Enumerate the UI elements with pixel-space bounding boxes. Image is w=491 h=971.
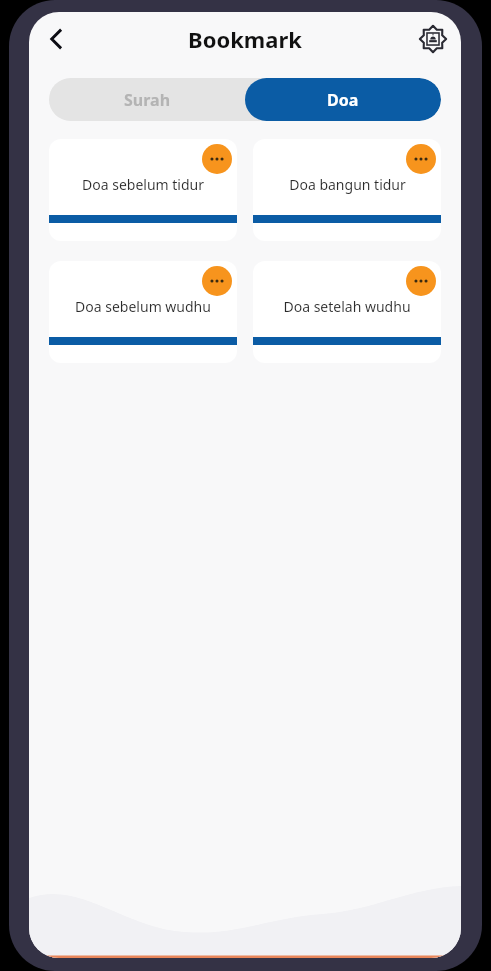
staticText: Doa bangun tidur (289, 175, 406, 194)
button[interactable]: Doa sebelum wudhu (49, 261, 237, 363)
staticText: Doa sebelum wudhu (75, 297, 211, 316)
button[interactable]: More options (406, 266, 436, 296)
staticText: Doa sebelum tidur (82, 175, 204, 194)
staticText: Bookmark (188, 24, 302, 54)
button[interactable]: Doa setelah wudhu (253, 261, 441, 363)
button[interactable]: More options (202, 144, 232, 174)
button[interactable]: Doa bangun tidur (253, 139, 441, 241)
button[interactable]: More options (202, 266, 232, 296)
button[interactable]: Doa (245, 78, 441, 121)
staticText: Surah (124, 89, 171, 111)
button[interactable]: Doa sebelum tidur (49, 139, 237, 241)
staticText: Doa setelah wudhu (283, 297, 411, 316)
button[interactable]: App logo (413, 19, 453, 59)
staticText: Doa (327, 89, 359, 111)
button[interactable]: Back (37, 19, 77, 59)
button[interactable]: Surah (49, 78, 245, 121)
button[interactable]: More options (406, 144, 436, 174)
